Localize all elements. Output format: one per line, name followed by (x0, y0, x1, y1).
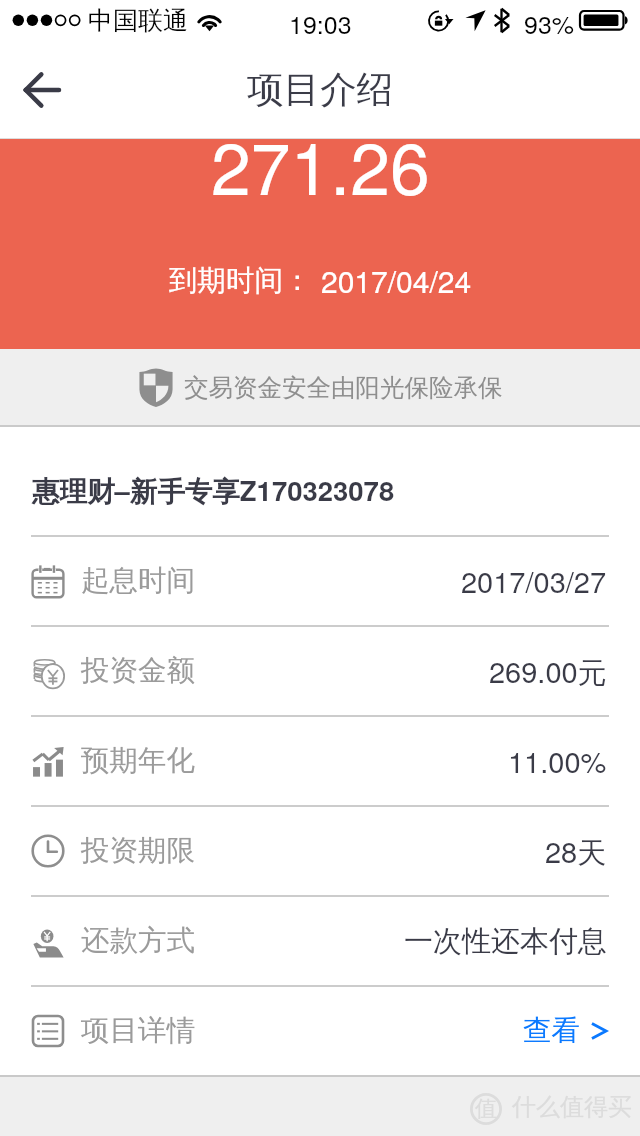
button[interactable]: Back (14, 62, 70, 118)
staticText: 一次性还本付息 (404, 923, 607, 960)
button[interactable]: 起息时间 (0, 535, 640, 625)
staticText: 值 (475, 1095, 497, 1123)
staticText: 2017/03/27 (461, 560, 607, 602)
button[interactable]: 还款方式 (0, 895, 640, 985)
staticText: 查看 (523, 1013, 580, 1049)
staticText: 2017/04/24 (321, 259, 472, 302)
button[interactable]: 投资期限 (0, 805, 640, 895)
staticText: 中国联通 (88, 5, 188, 36)
staticText: 11.00% (508, 740, 607, 782)
staticText: 19:03 (289, 5, 352, 41)
button[interactable]: 预期年化 (0, 715, 640, 805)
staticText: 惠理财–新手专享Z170323078 (32, 470, 395, 509)
staticText: 269.00元 (489, 650, 607, 692)
staticText: 还款方式 (81, 923, 195, 959)
staticText: 预期年化 (81, 743, 195, 779)
staticText: 28天 (545, 830, 607, 872)
staticText: 投资金额 (81, 653, 195, 689)
staticText: 项目介绍 (247, 67, 393, 113)
staticText: 起息时间 (81, 563, 195, 599)
staticText: 93% (524, 5, 575, 41)
staticText: 什么值得买 (512, 1092, 632, 1122)
staticText: 项目详情 (81, 1013, 195, 1049)
staticText: 交易资金安全由阳光保险承保 (184, 372, 503, 403)
staticText: 271.26 (211, 113, 430, 215)
staticText: 到期时间： (169, 263, 312, 299)
button[interactable]: 项目详情 (0, 985, 640, 1075)
staticText: 投资期限 (81, 833, 195, 869)
button[interactable]: 投资金额 (0, 625, 640, 715)
